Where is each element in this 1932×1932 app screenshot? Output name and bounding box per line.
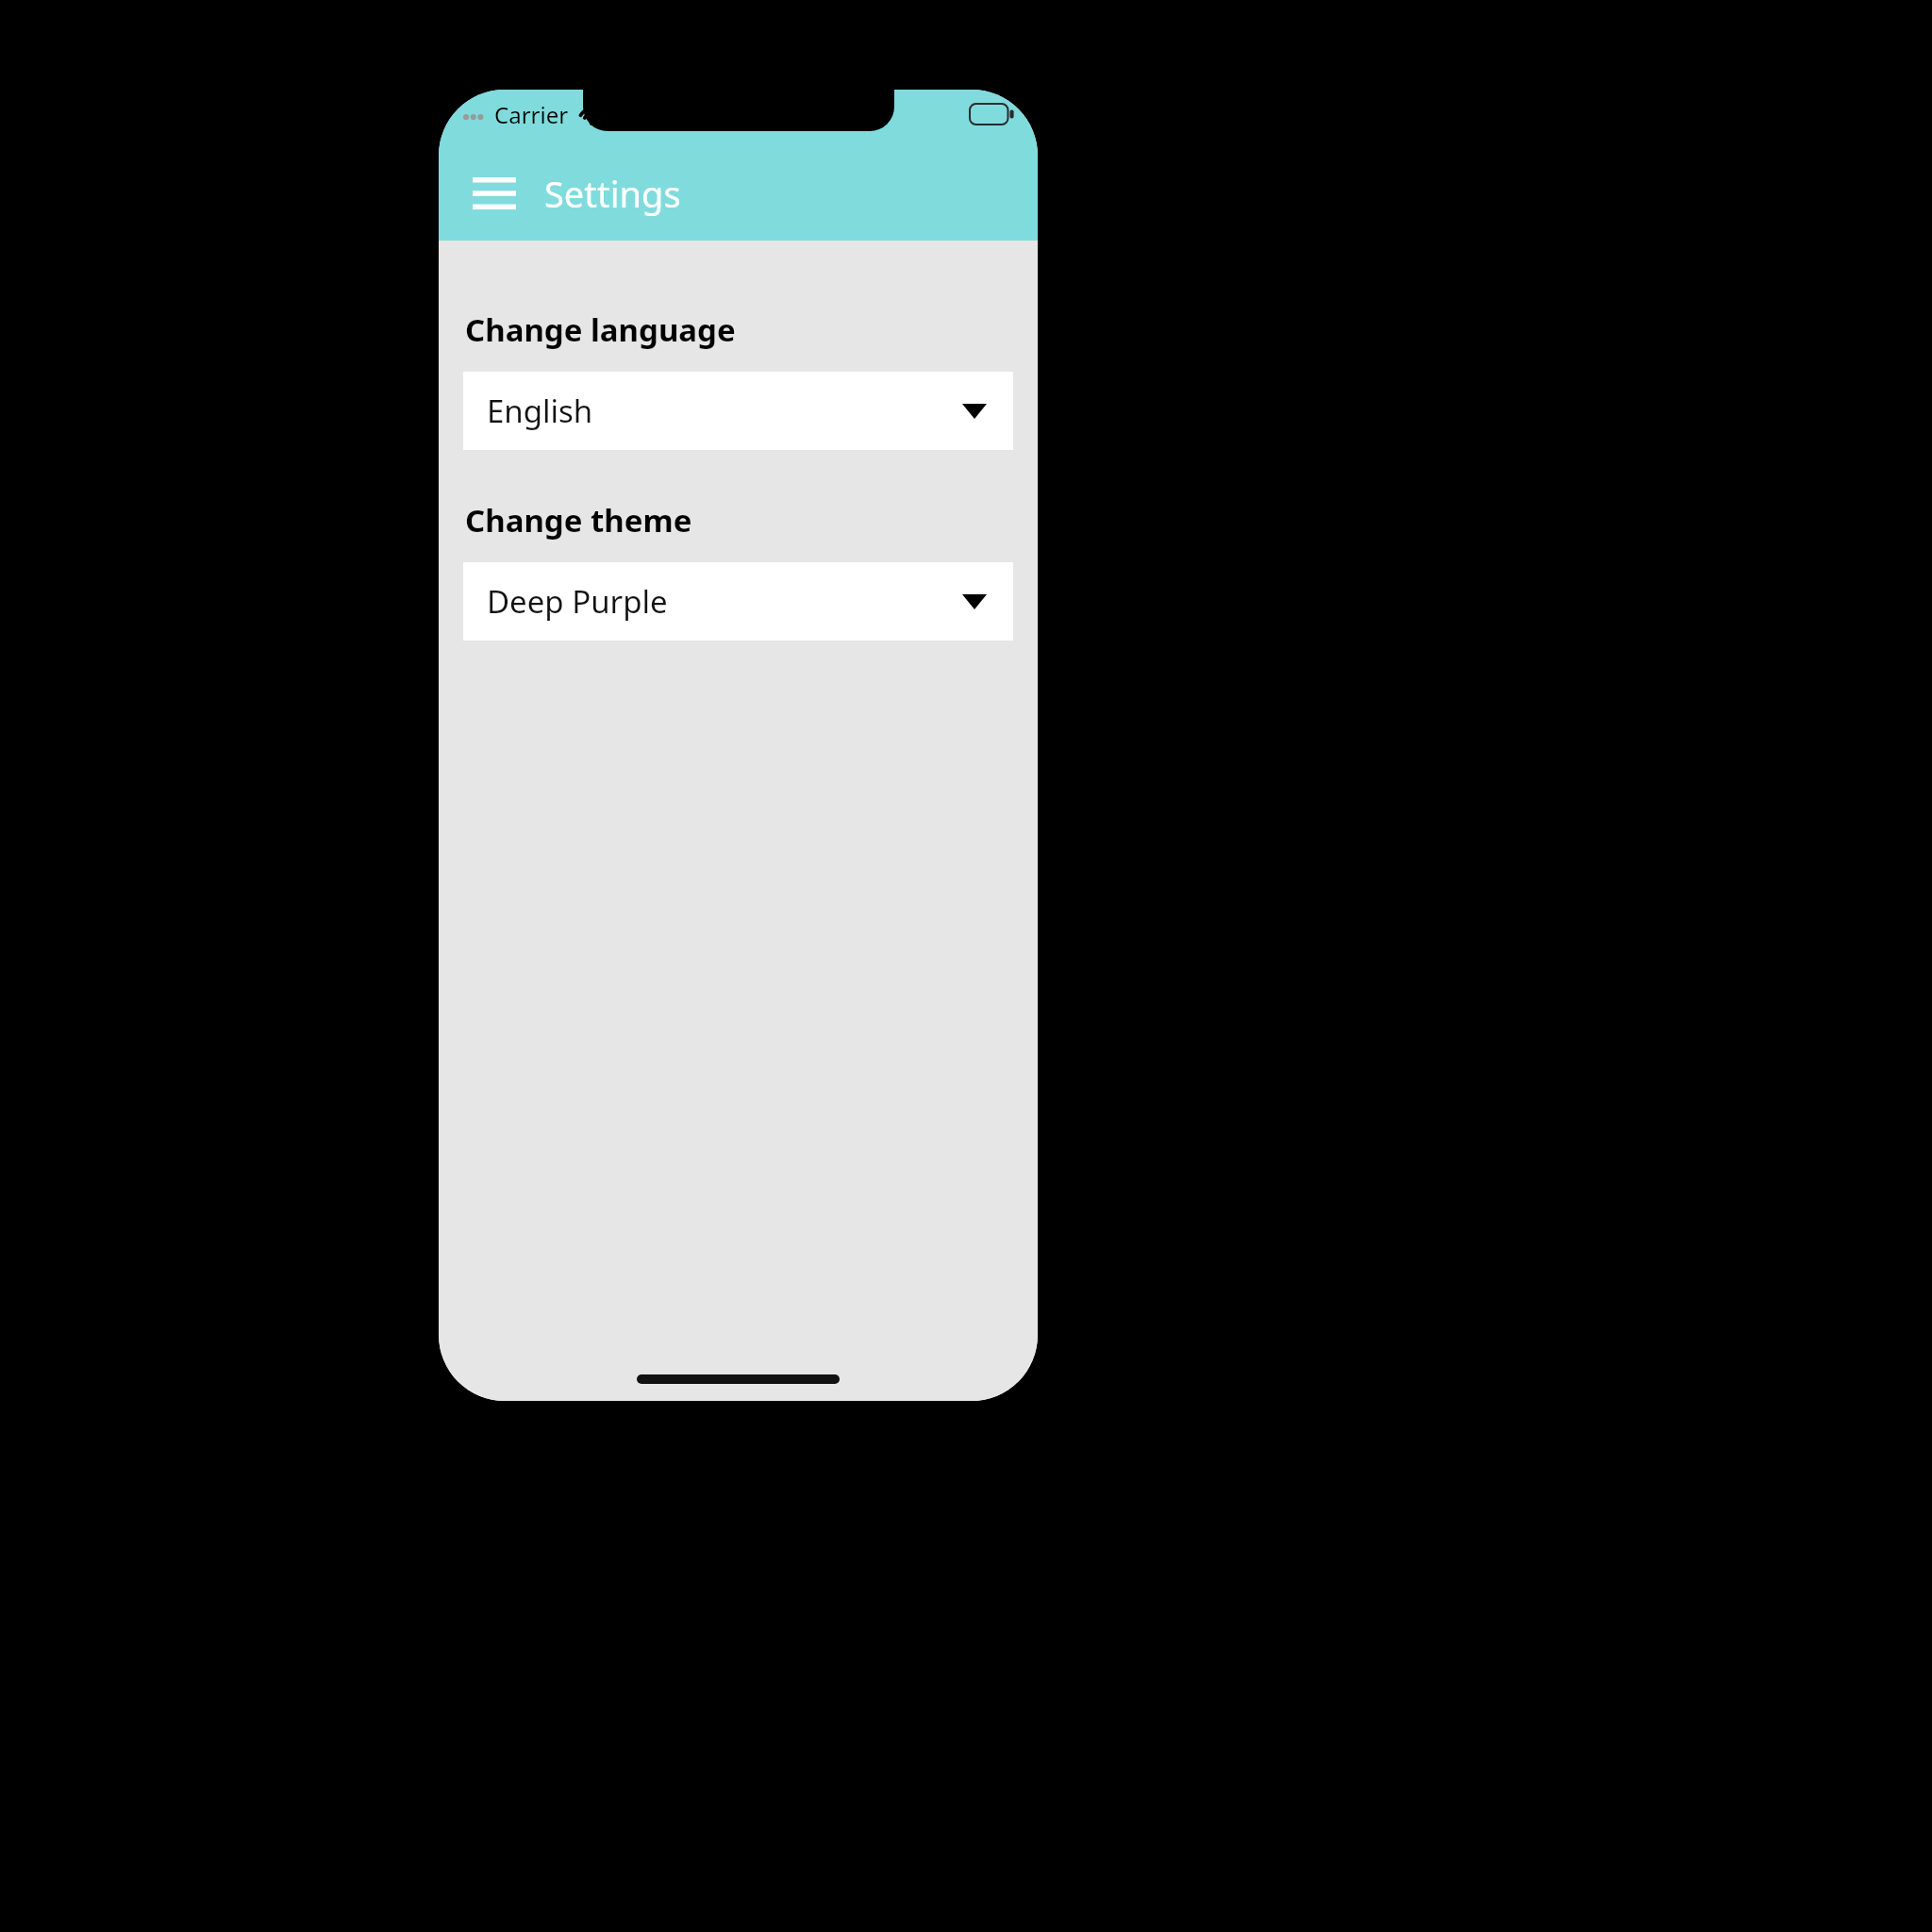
- staticText: English: [487, 390, 593, 432]
- staticText: Change theme: [465, 499, 692, 541]
- staticText: Change language: [465, 308, 736, 351]
- button[interactable]: English: [463, 372, 1013, 450]
- staticText: Deep Purple: [487, 580, 668, 623]
- button[interactable]: Deep Purple: [463, 562, 1013, 641]
- button[interactable]: Open navigation menu: [467, 166, 522, 221]
- staticText: Carrier: [494, 99, 569, 130]
- staticText: Settings: [544, 169, 681, 218]
